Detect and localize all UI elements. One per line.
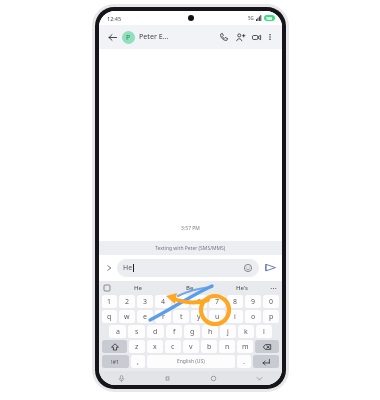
button[interactable]: Backspace <box>255 340 279 353</box>
button[interactable]: i <box>227 310 243 323</box>
button[interactable]: x <box>147 340 163 353</box>
staticText: 12:45 <box>107 15 122 22</box>
staticText: b <box>207 342 212 352</box>
button[interactable]: n <box>219 340 235 353</box>
button[interactable]: Clipboard <box>103 284 111 292</box>
button[interactable]: 7 <box>209 295 225 308</box>
button[interactable]: 2 <box>119 295 135 308</box>
staticText: s <box>135 327 139 337</box>
staticText: u <box>215 312 220 322</box>
button[interactable]: Peter E… <box>139 32 217 42</box>
button[interactable]: c <box>165 340 181 353</box>
button[interactable]: q <box>102 310 117 323</box>
button[interactable]: Home <box>190 371 236 385</box>
staticText: q <box>107 312 112 322</box>
staticText: He <box>123 263 133 273</box>
staticText: , <box>137 357 139 367</box>
staticText: 7 <box>215 297 220 307</box>
button[interactable]: More suggestions <box>268 283 278 293</box>
button[interactable]: He <box>111 281 164 294</box>
button[interactable]: w <box>119 310 135 323</box>
button[interactable]: 5 <box>173 295 189 308</box>
staticText: 3:57 PM <box>181 225 200 232</box>
button[interactable]: Back <box>105 30 119 44</box>
staticText: z <box>135 342 139 352</box>
button[interactable]: . <box>237 355 251 368</box>
staticText: Texting with Peter (SMS/MMS) <box>155 245 226 252</box>
button[interactable]: l <box>256 325 272 338</box>
button[interactable]: 3 <box>137 295 153 308</box>
button[interactable]: Shift <box>102 340 127 353</box>
button[interactable]: z <box>129 340 145 353</box>
button[interactable]: k <box>238 325 254 338</box>
button[interactable]: Recents <box>144 371 190 385</box>
button[interactable]: He <box>117 259 259 277</box>
button[interactable]: j <box>220 325 236 338</box>
button[interactable]: y <box>191 310 207 323</box>
button[interactable]: o <box>245 310 261 323</box>
staticText: 5G <box>248 15 254 21</box>
button[interactable]: t <box>173 310 189 323</box>
button[interactable]: b <box>201 340 217 353</box>
staticText: a <box>116 327 120 337</box>
staticText: m <box>242 342 249 352</box>
staticText: 0 <box>269 297 274 307</box>
button[interactable]: p <box>263 310 279 323</box>
button[interactable]: English (US) <box>147 355 235 368</box>
staticText: 4 <box>161 297 166 307</box>
button[interactable]: More options <box>264 31 276 43</box>
staticText: Be <box>186 284 194 292</box>
staticText: h <box>208 327 213 337</box>
staticText: !#1 <box>111 358 120 365</box>
button[interactable]: e <box>137 310 153 323</box>
button[interactable]: !#1 <box>102 355 129 368</box>
staticText: . <box>243 357 245 367</box>
staticText: 2 <box>125 297 130 307</box>
button[interactable]: r <box>155 310 171 323</box>
button[interactable]: He's <box>216 281 268 294</box>
staticText: t <box>180 312 183 322</box>
button[interactable]: Emoji <box>243 263 253 273</box>
button[interactable]: Video call <box>249 30 263 44</box>
staticText: He <box>134 284 142 292</box>
button[interactable]: h <box>202 325 218 338</box>
button[interactable]: 6 <box>191 295 207 308</box>
staticText: c <box>171 342 175 352</box>
button[interactable]: Add person <box>233 30 247 44</box>
staticText: k <box>244 327 248 337</box>
button[interactable]: Contact avatar <box>122 31 135 44</box>
staticText: p <box>269 312 274 322</box>
button[interactable]: Send SMS <box>262 260 278 276</box>
button[interactable]: , <box>131 355 145 368</box>
staticText: o <box>251 312 256 322</box>
button[interactable]: Voice input <box>99 371 144 385</box>
button[interactable]: Call <box>217 30 231 44</box>
button[interactable]: Enter <box>253 355 279 368</box>
button[interactable]: Hide keyboard <box>236 371 282 385</box>
button[interactable]: 8 <box>227 295 243 308</box>
staticText: d <box>153 327 158 337</box>
button[interactable]: a <box>109 325 126 338</box>
staticText: Peter E… <box>139 32 169 42</box>
button[interactable]: m <box>237 340 253 353</box>
button[interactable]: 9 <box>245 295 261 308</box>
button[interactable]: s <box>128 325 145 338</box>
button[interactable]: 1 <box>102 295 117 308</box>
staticText: l <box>263 327 265 337</box>
staticText: 100 <box>266 16 273 21</box>
staticText: P <box>126 33 131 43</box>
staticText: n <box>225 342 230 352</box>
staticText: 8 <box>233 297 238 307</box>
button[interactable]: f <box>166 325 182 338</box>
button[interactable]: Be <box>164 281 216 294</box>
button[interactable]: 4 <box>155 295 171 308</box>
button[interactable]: Expand actions <box>103 262 115 274</box>
staticText: e <box>143 312 147 322</box>
button[interactable]: v <box>183 340 199 353</box>
button[interactable]: g <box>184 325 200 338</box>
staticText: He's <box>236 284 249 292</box>
button[interactable]: 0 <box>263 295 279 308</box>
button[interactable]: u <box>209 310 225 323</box>
button[interactable]: d <box>147 325 164 338</box>
staticText: English (US) <box>177 358 205 365</box>
